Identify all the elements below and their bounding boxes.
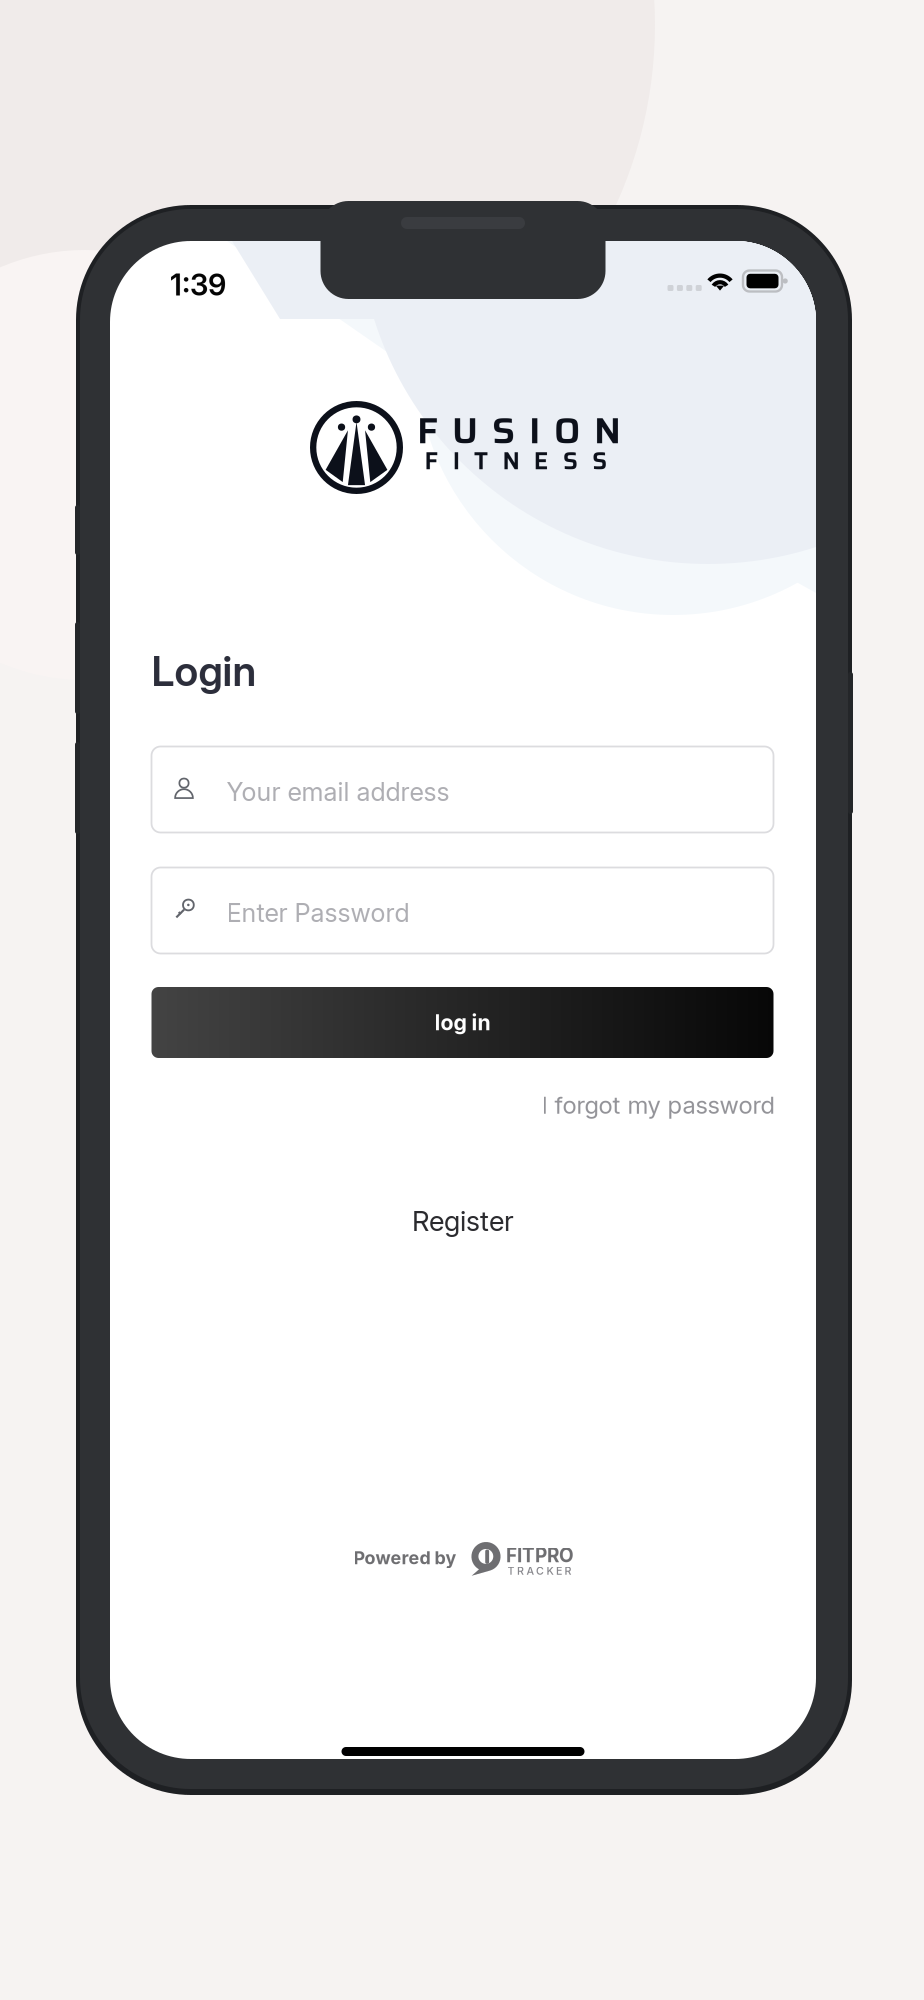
button[interactable]: I forgot my password: [444, 1081, 774, 1129]
staticText: Enter Password: [226, 897, 409, 928]
staticText: FITNESS: [424, 442, 607, 480]
staticText: log in: [434, 1010, 490, 1035]
staticText: Register: [412, 1204, 514, 1238]
staticText: Your email address: [226, 776, 449, 807]
button[interactable]: Enter Password: [151, 867, 773, 953]
button[interactable]: Register: [343, 1193, 583, 1249]
button[interactable]: log in: [151, 987, 773, 1058]
staticText: FUSION: [417, 401, 621, 460]
staticText: TRACKER: [507, 1564, 571, 1577]
staticText: Login: [151, 646, 256, 696]
staticText: 1:39: [170, 267, 226, 302]
staticText: Powered by: [353, 1547, 456, 1569]
staticText: I forgot my password: [541, 1090, 774, 1119]
button[interactable]: Your email address: [151, 746, 773, 832]
staticText: FITPRO: [506, 1544, 574, 1567]
